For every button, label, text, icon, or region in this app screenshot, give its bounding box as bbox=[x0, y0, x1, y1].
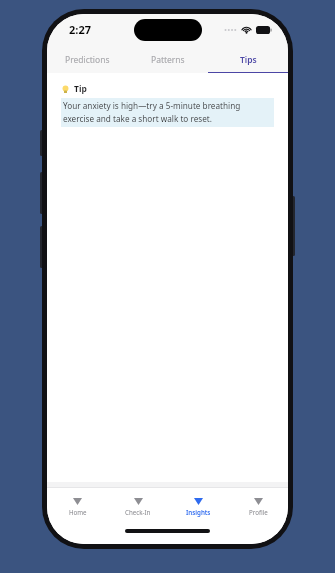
button[interactable]: Patterns bbox=[128, 47, 208, 73]
staticText: Home bbox=[69, 508, 87, 516]
staticText: Your anxiety is high—try a 5-minute brea… bbox=[63, 100, 272, 125]
staticText: Profile bbox=[249, 508, 268, 516]
button[interactable]: Home bbox=[47, 488, 108, 526]
button[interactable]: Profile bbox=[228, 488, 288, 526]
staticText: Patterns bbox=[151, 54, 185, 66]
staticText: Tips bbox=[240, 54, 257, 66]
button[interactable]: Insights bbox=[168, 488, 228, 526]
staticText: Predictions bbox=[65, 54, 110, 66]
button[interactable]: Check-In bbox=[108, 488, 168, 526]
staticText: Insights bbox=[186, 508, 211, 516]
button[interactable]: Predictions bbox=[47, 47, 128, 73]
button[interactable]: Tips bbox=[208, 47, 288, 73]
staticText: Check-In bbox=[125, 508, 151, 516]
staticText: 2:27 bbox=[69, 22, 91, 37]
staticText: Tip bbox=[74, 83, 87, 95]
